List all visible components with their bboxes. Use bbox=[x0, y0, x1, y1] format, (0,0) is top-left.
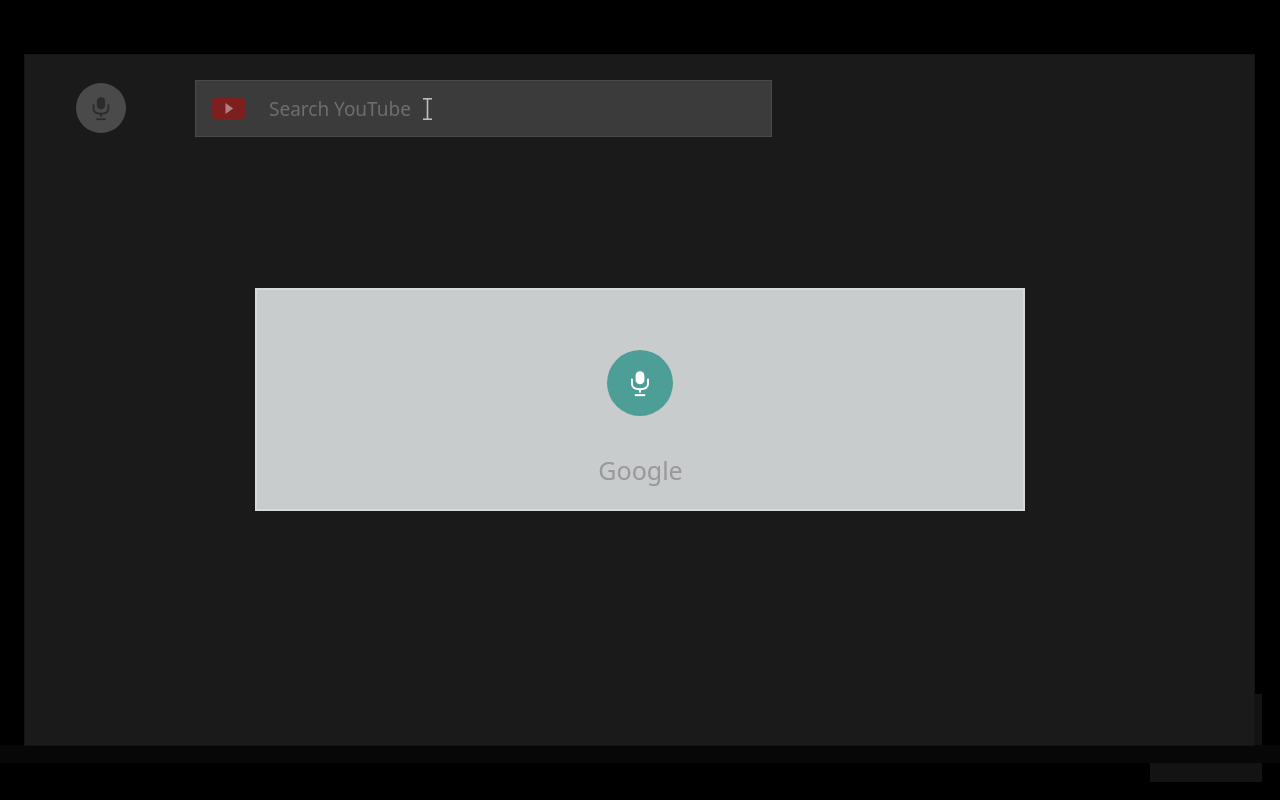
staticText: Google bbox=[598, 453, 683, 487]
staticText: Search YouTube bbox=[269, 96, 411, 122]
button[interactable]: Voice search bbox=[76, 83, 126, 133]
button[interactable]: Speak now bbox=[255, 288, 1025, 511]
button[interactable]: Speak now bbox=[607, 350, 673, 416]
button[interactable]: Search YouTube bbox=[195, 80, 772, 137]
